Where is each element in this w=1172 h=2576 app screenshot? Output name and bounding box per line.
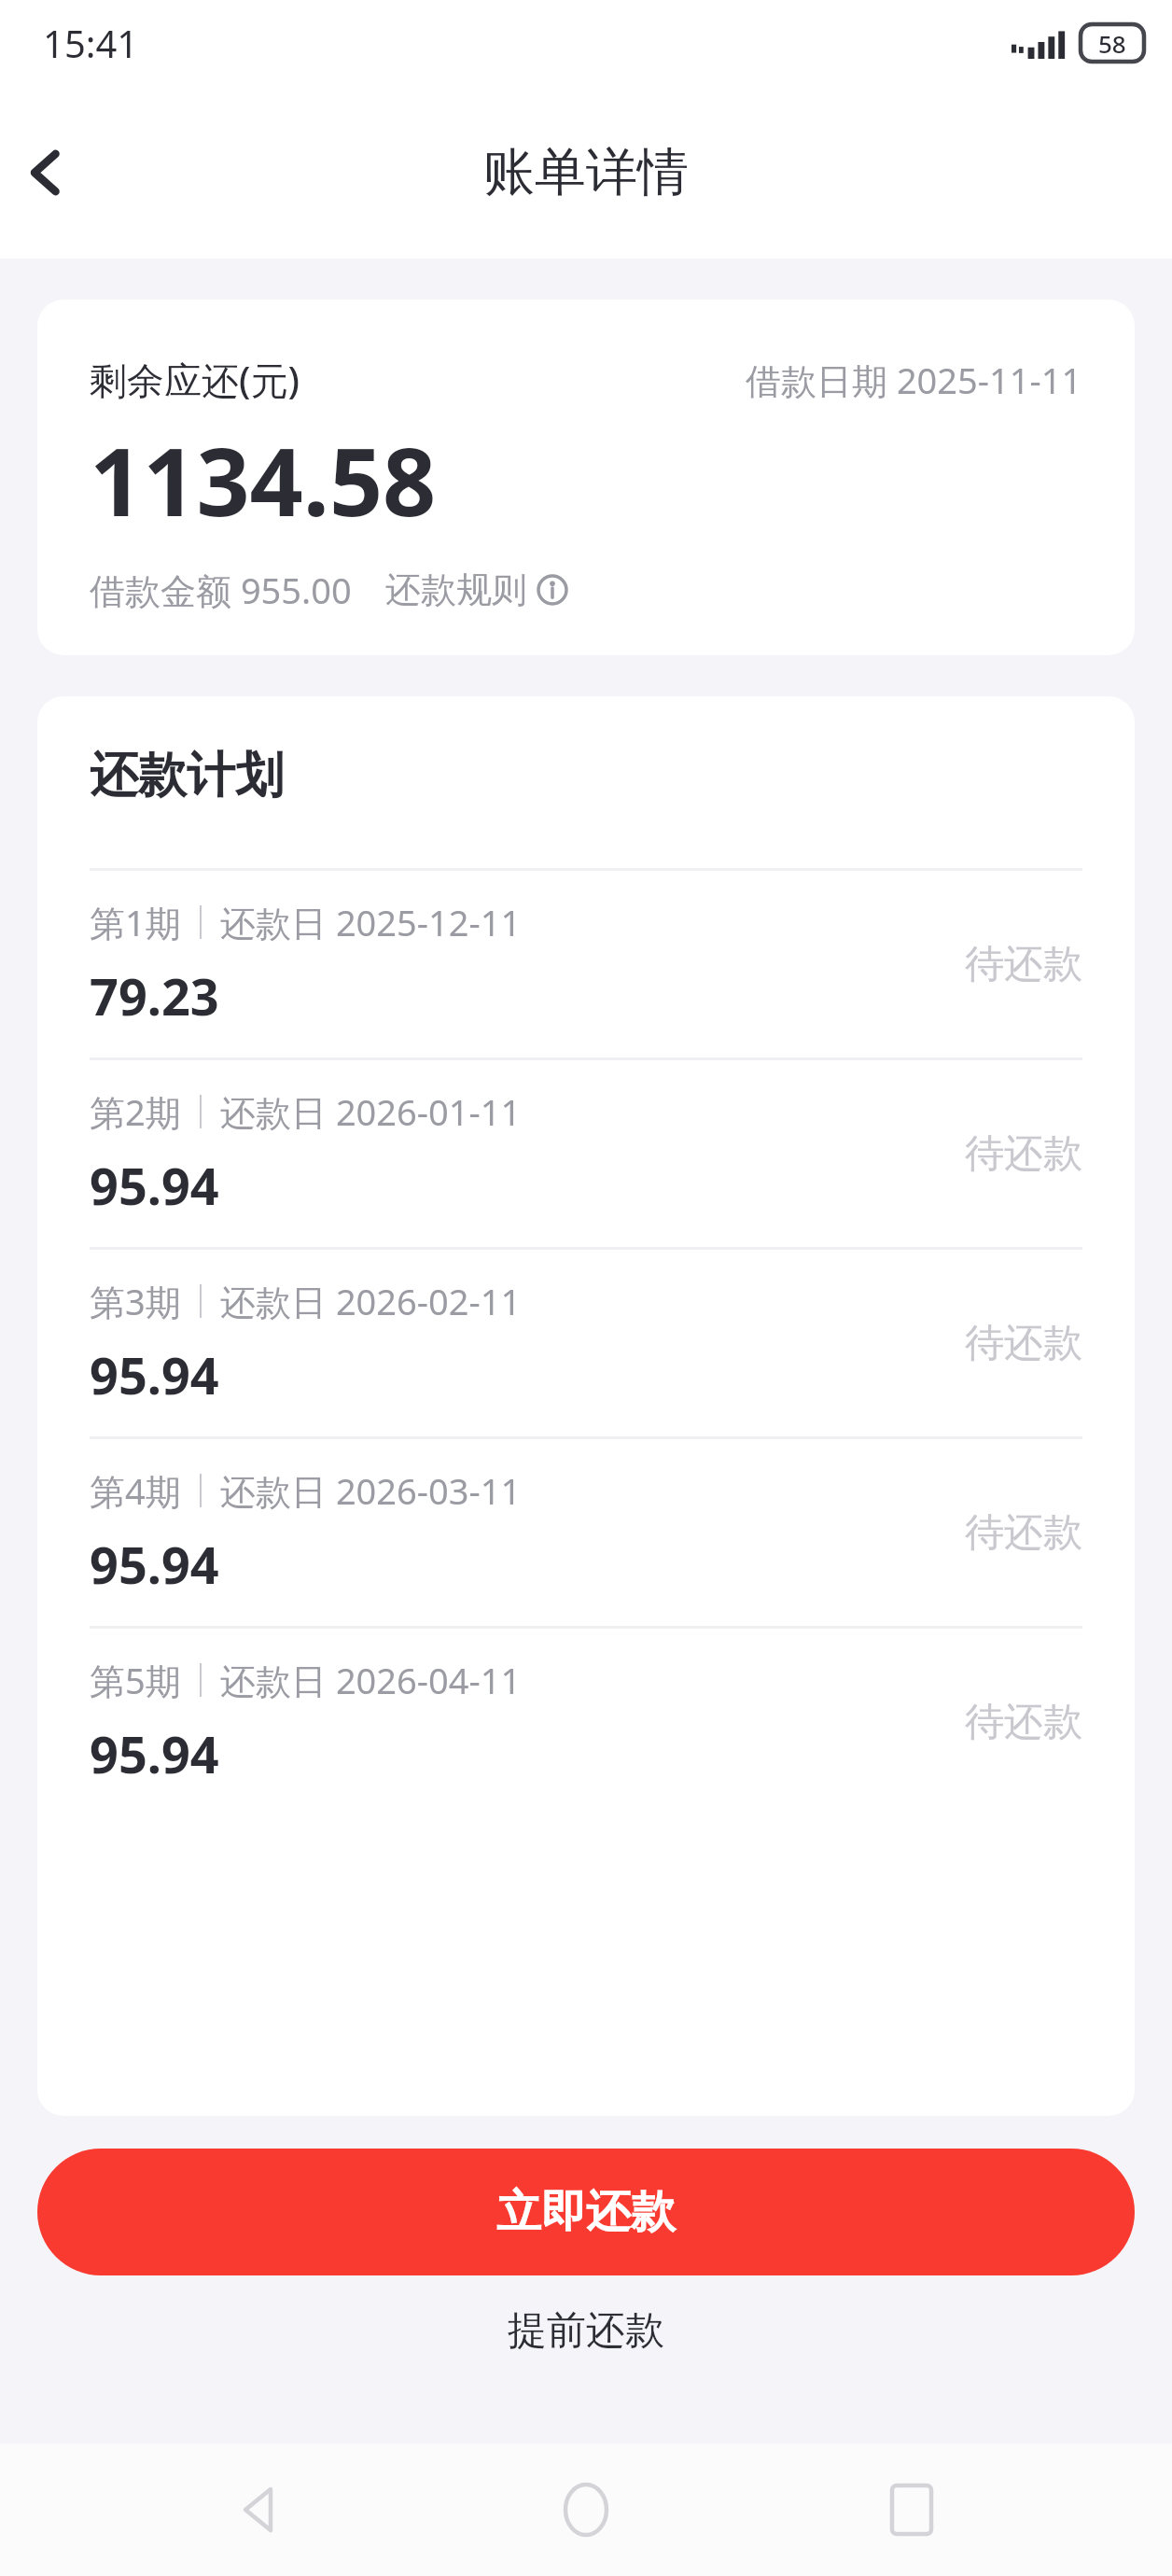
staticText: 95.94: [90, 1151, 219, 1220]
staticText: 还款计划: [90, 745, 284, 806]
button[interactable]: 提前还款: [0, 2275, 1172, 2386]
staticText: 账单详情: [483, 140, 689, 204]
staticText: 还款日 2025-12-11: [220, 898, 522, 946]
button[interactable]: 第3期: [90, 1250, 1082, 1436]
button[interactable]: 第1期: [90, 871, 1082, 1057]
button[interactable]: 第4期: [90, 1439, 1082, 1626]
staticText: 还款日 2026-02-11: [220, 1277, 522, 1325]
staticText: 第1期: [90, 898, 181, 946]
staticText: 15:41: [43, 18, 139, 68]
staticText: 95.94: [90, 1340, 219, 1409]
button[interactable]: Back: [2, 129, 90, 217]
staticText: 还款日 2026-01-11: [220, 1087, 522, 1136]
staticText: 还款规则: [385, 567, 527, 612]
button[interactable]: 立即还款: [37, 2149, 1135, 2275]
staticText: 立即还款: [496, 2184, 676, 2240]
staticText: 还款日 2026-04-11: [220, 1656, 522, 1704]
staticText: 借款日期 2025-11-11: [746, 356, 1082, 404]
staticText: 79.23: [90, 961, 219, 1030]
staticText: 待还款: [965, 1319, 1082, 1368]
staticText: 还款日 2026-03-11: [220, 1466, 522, 1515]
button[interactable]: Home: [521, 2444, 651, 2575]
button[interactable]: 第2期: [90, 1060, 1082, 1247]
staticText: 待还款: [965, 1129, 1082, 1179]
button[interactable]: 还款规则: [385, 567, 568, 612]
staticText: 第2期: [90, 1087, 181, 1136]
staticText: 提前还款: [508, 2306, 664, 2356]
staticText: 待还款: [965, 1508, 1082, 1558]
staticText: 58: [1098, 27, 1126, 60]
button[interactable]: 剩余应还(元): [37, 300, 1135, 655]
staticText: 待还款: [965, 940, 1082, 989]
staticText: 第3期: [90, 1277, 181, 1325]
button[interactable]: Back: [195, 2444, 326, 2575]
staticText: 95.94: [90, 1530, 219, 1599]
staticText: 剩余应还(元): [90, 354, 300, 405]
button[interactable]: Recents: [846, 2444, 977, 2575]
button[interactable]: 第5期: [90, 1629, 1082, 1815]
staticText: 第5期: [90, 1656, 181, 1704]
staticText: 1134.58: [90, 416, 437, 543]
staticText: 95.94: [90, 1719, 219, 1788]
staticText: 借款金额 955.00: [90, 566, 352, 614]
staticText: 第4期: [90, 1466, 181, 1515]
staticText: 待还款: [965, 1698, 1082, 1747]
